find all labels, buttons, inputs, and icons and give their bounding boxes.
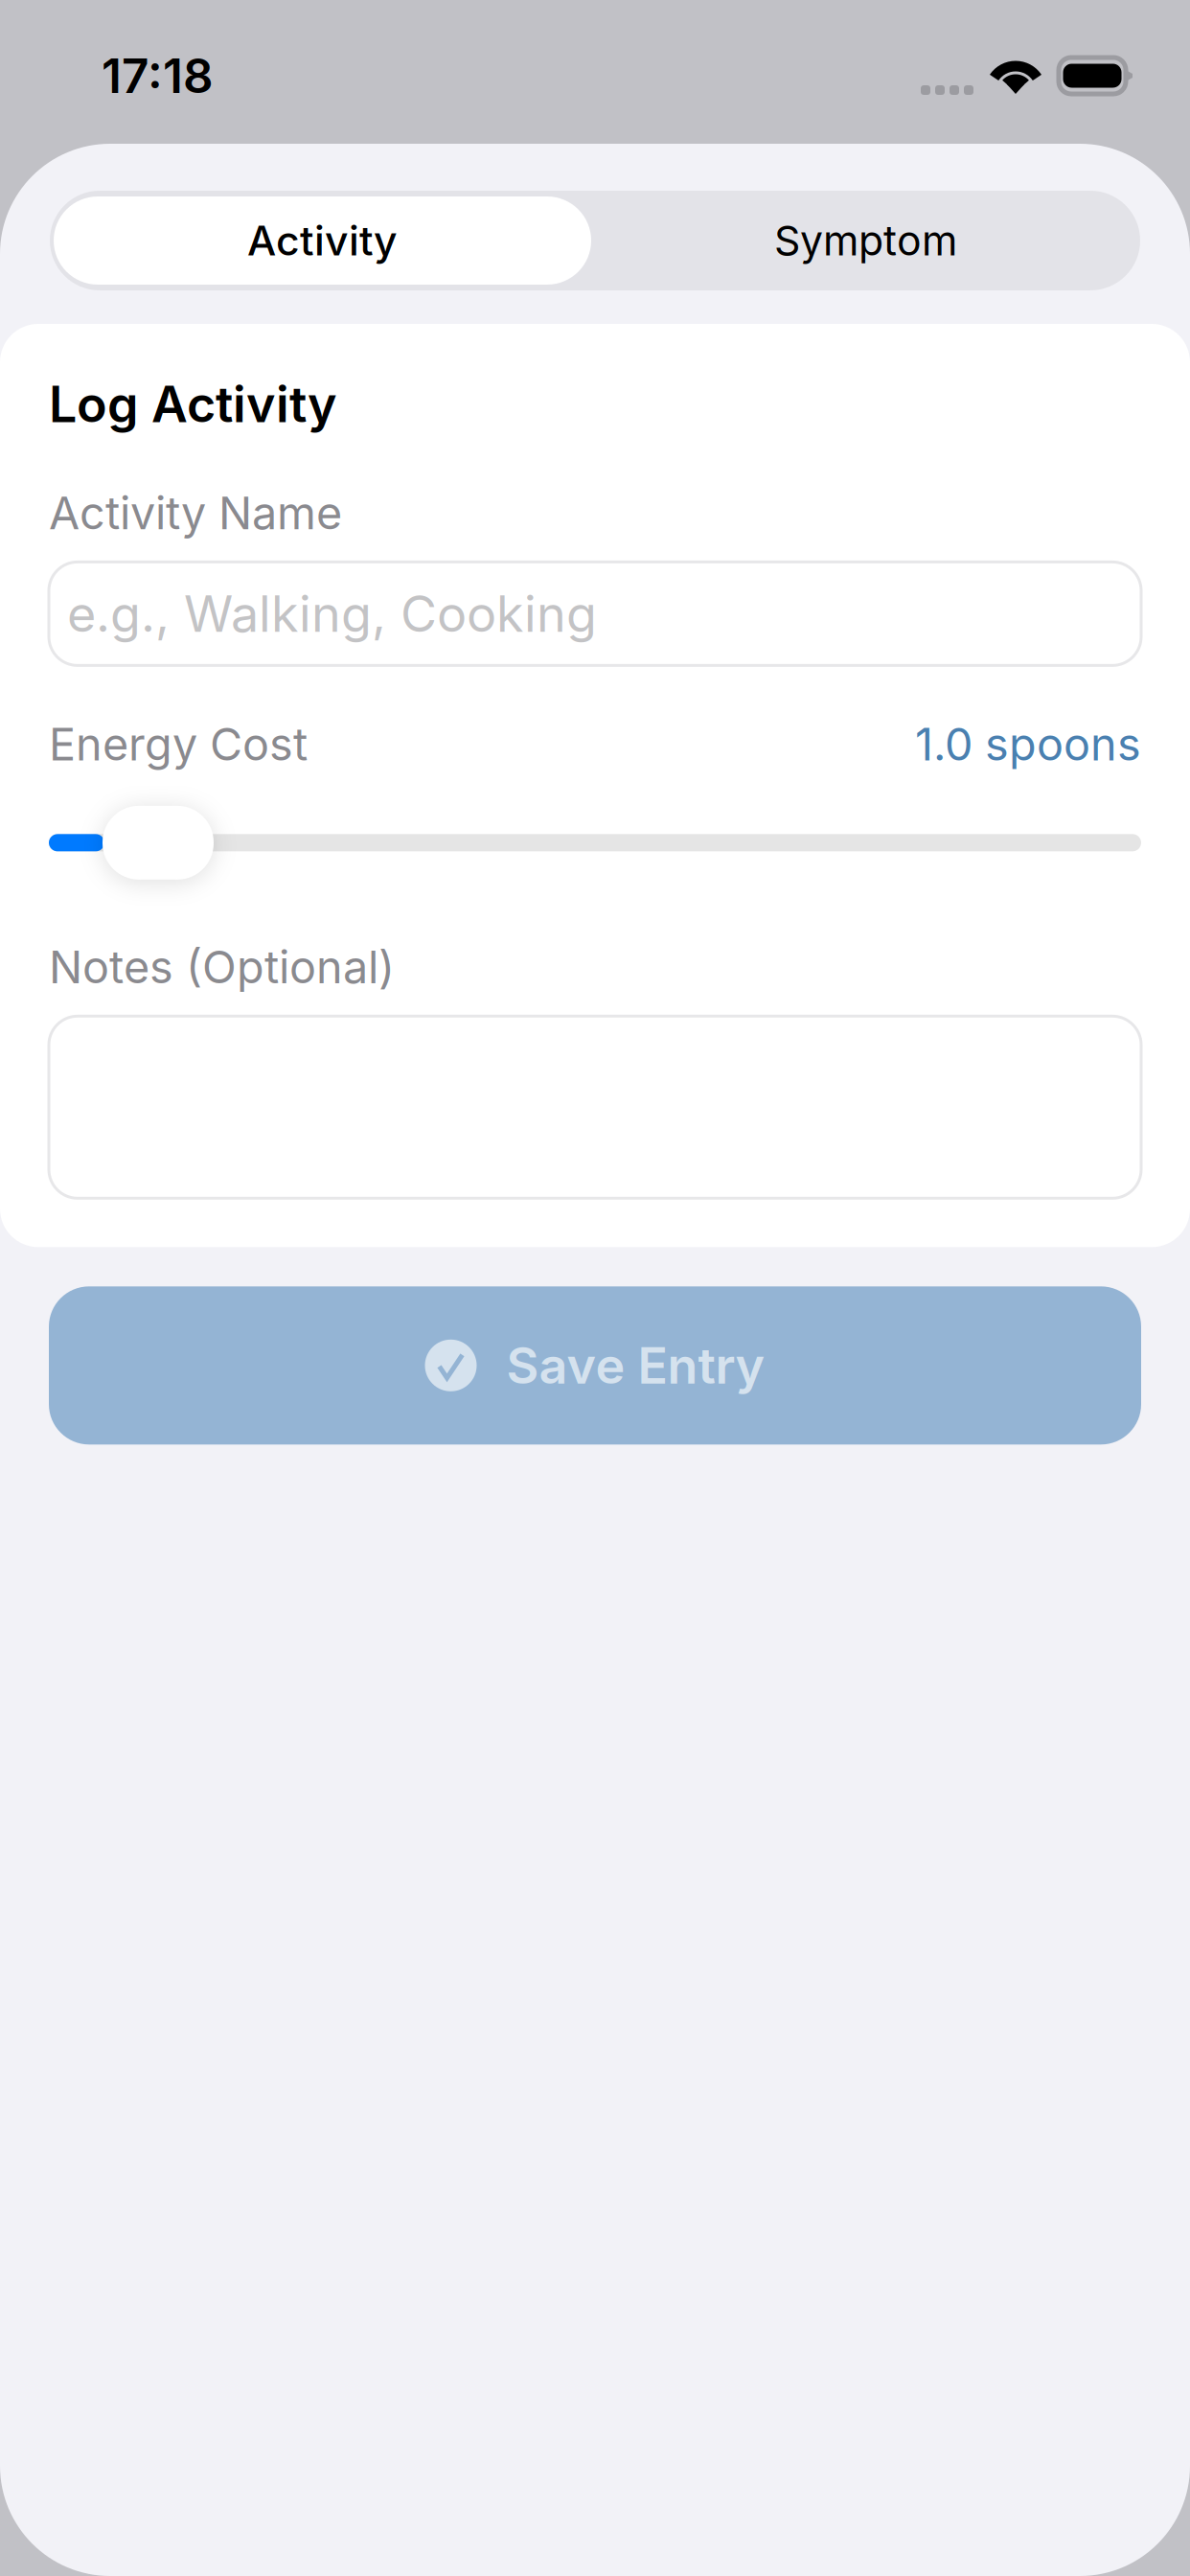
button[interactable]: Symptom (595, 196, 1136, 285)
button[interactable]: Notes (49, 1016, 1141, 1198)
staticText: e.g., Walking, Cooking (67, 584, 597, 644)
staticText: Activity (247, 216, 398, 265)
staticText: Activity Name (49, 486, 342, 540)
button[interactable]: Activity (54, 196, 595, 285)
staticText: Energy Cost (49, 717, 308, 771)
staticText: Symptom (774, 216, 957, 265)
staticText: Notes (Optional) (49, 940, 395, 994)
button[interactable]: Energy Cost, 1.0 spoons (49, 806, 1141, 880)
button[interactable]: Activity Name (49, 562, 1141, 665)
staticText: 17:18 (102, 47, 214, 104)
staticText: Save Entry (506, 1335, 765, 1396)
staticText: Log Activity (49, 374, 337, 434)
staticText: 1.0 spoons (915, 717, 1141, 771)
button[interactable]: Save Entry (49, 1286, 1141, 1444)
